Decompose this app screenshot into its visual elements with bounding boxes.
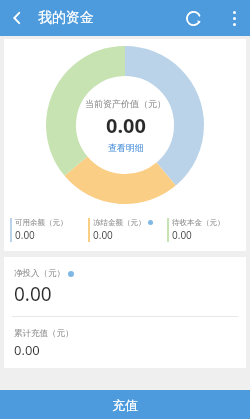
staticText: 我的资金: [38, 9, 94, 27]
staticText: 待收本金（元）: [172, 218, 225, 227]
button[interactable]: 净投入（元）: [4, 257, 246, 316]
button[interactable]: 可用余额（元）: [10, 218, 88, 242]
button[interactable]: Refresh: [178, 3, 208, 33]
button[interactable]: 查看明细: [108, 142, 144, 153]
staticText: 当前资产价值（元）: [85, 98, 166, 109]
staticText: 0.00: [93, 228, 113, 242]
staticText: 0.00: [172, 228, 192, 242]
staticText: 0.00: [14, 341, 40, 359]
staticText: 0.00: [15, 228, 35, 242]
staticText: 可用余额（元）: [15, 218, 68, 227]
button[interactable]: 冻结金额（元）: [88, 218, 167, 242]
staticText: 查看明细: [108, 142, 144, 153]
staticText: 累计充值（元）: [14, 328, 74, 339]
button[interactable]: 累计充值（元）: [4, 317, 246, 368]
staticText: 冻结金额（元）: [93, 218, 146, 227]
staticText: 0.00: [106, 112, 146, 139]
button[interactable]: More options: [218, 0, 250, 36]
button[interactable]: 待收本金（元）: [167, 218, 246, 242]
staticText: 充值: [112, 397, 138, 413]
staticText: 净投入（元）: [14, 268, 65, 279]
button[interactable]: Back: [0, 0, 34, 36]
button[interactable]: 充值: [0, 390, 250, 419]
staticText: 0.00: [14, 281, 52, 307]
